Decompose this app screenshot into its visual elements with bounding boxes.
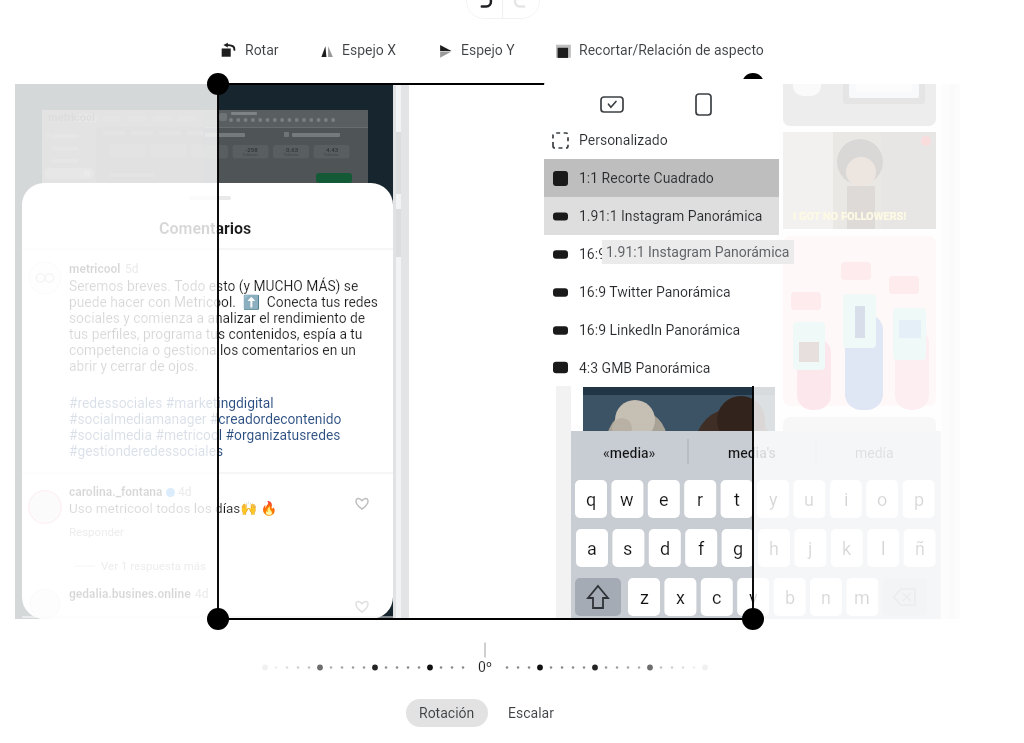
staticText: tus perfiles, programa tus contenidos, e… — [69, 326, 363, 342]
staticText: Uso metricool todos los días🙌 🔥 — [69, 500, 278, 516]
button[interactable]: Espejo X — [315, 38, 403, 62]
staticText: ñ — [915, 538, 925, 559]
staticText: Followers — [324, 153, 340, 157]
staticText: e — [659, 489, 669, 510]
staticText: j — [808, 538, 813, 559]
staticText: 16:9 Instagram Historias — [579, 246, 733, 262]
button[interactable]: Recortar/Relación de aspecto — [550, 38, 770, 62]
staticText: z — [640, 587, 649, 608]
staticText: s — [623, 538, 633, 559]
button[interactable]: 16:9 Twitter Panorámica — [544, 273, 779, 311]
staticText: Comentarios — [159, 219, 252, 238]
staticText: f — [698, 538, 705, 559]
staticText: a — [587, 538, 597, 559]
staticText: 4d — [195, 587, 209, 601]
staticText: abrir y cerrar de ojos. — [69, 358, 198, 374]
staticText: #socialmediamanager #creadordecontenido — [69, 411, 342, 427]
staticText: 0.63 — [286, 146, 299, 153]
button[interactable]: 1.91:1 Instagram Panorámica — [544, 197, 779, 235]
staticText: m — [854, 587, 870, 608]
staticText: y — [769, 489, 778, 510]
staticText: sociales y comienza a analizar el rendim… — [69, 310, 366, 326]
staticText: g — [733, 538, 744, 559]
button[interactable]: Rotación — [406, 699, 488, 727]
staticText: media's — [728, 445, 776, 461]
staticText: medía — [855, 445, 894, 461]
staticText: #socialmedia #metricool #organizatusrede… — [69, 427, 341, 443]
staticText: k — [842, 538, 852, 559]
staticText: l — [881, 538, 886, 559]
staticText: «media» — [603, 445, 656, 461]
staticText: metricool — [69, 262, 121, 276]
staticText: Seremos breves. Todo esto (y MUCHO MÁS) … — [69, 278, 359, 294]
staticText: Responder — [69, 525, 124, 538]
staticText: x — [676, 587, 685, 608]
button[interactable]: Rotar — [214, 38, 285, 62]
button[interactable]: Horizontal — [596, 91, 628, 117]
staticText: carolina._fontana — [69, 485, 163, 499]
staticText: #redessociales #marketingdigital — [69, 395, 274, 411]
staticText: 5d — [125, 262, 139, 276]
staticText: gedalia.busines.online — [69, 587, 191, 601]
button[interactable]: Deshacer — [466, 0, 502, 19]
staticText: 0º — [478, 659, 493, 675]
button[interactable]: 1.91:1 Instagram Panorámica — [602, 240, 794, 264]
staticText: 1.91:1 Instagram Panorámica — [606, 244, 790, 260]
staticText: 4d — [178, 485, 192, 499]
staticText: p — [914, 489, 925, 510]
button[interactable]: Vertical — [687, 91, 719, 117]
staticText: #gestionderedessociales — [69, 443, 224, 459]
staticText: u — [804, 489, 814, 510]
staticText: r — [697, 489, 704, 510]
button[interactable]: 16:9 Instagram Historias — [544, 235, 779, 273]
staticText: -258 — [245, 146, 258, 153]
staticText: t — [734, 489, 740, 510]
staticText: I GOT NO FOLLOWERS! — [793, 210, 907, 223]
button[interactable]: Escalar — [498, 699, 564, 727]
staticText: w — [620, 489, 634, 510]
staticText: competencia o gestiona los comentarios e… — [69, 342, 356, 358]
button[interactable]: 16:9 LinkedIn Panorámica — [544, 311, 779, 349]
staticText: Followers — [243, 153, 259, 157]
staticText: Personalizado — [579, 132, 668, 148]
staticText: Rotar — [245, 42, 279, 58]
staticText: 16:9 Twitter Panorámica — [579, 284, 731, 300]
staticText: 1:1 Recorte Cuadrado — [579, 170, 714, 186]
button[interactable]: Rehacer — [503, 0, 540, 19]
staticText: Espejo Y — [461, 42, 515, 58]
staticText: i — [844, 489, 849, 510]
staticText: d — [660, 538, 671, 559]
staticText: 1.91:1 Instagram Panorámica — [579, 208, 763, 224]
staticText: Ver 1 respuesta más — [101, 559, 207, 572]
staticText: b — [785, 587, 796, 608]
staticText: Recortar/Relación de aspecto — [579, 42, 764, 58]
staticText: q — [586, 489, 597, 510]
button[interactable]: Personalizado — [544, 121, 779, 159]
staticText: c — [712, 587, 722, 608]
staticText: Escalar — [508, 705, 554, 721]
staticText: 16:9 LinkedIn Panorámica — [579, 322, 741, 338]
staticText: n — [821, 587, 831, 608]
staticText: Rotación — [419, 705, 475, 721]
staticText: v — [749, 587, 758, 608]
staticText: 4.43 — [326, 146, 339, 153]
button[interactable]: Espejo Y — [434, 38, 521, 62]
button[interactable]: 4:3 GMB Panorámica — [544, 349, 779, 386]
staticText: h — [769, 538, 779, 559]
staticText: puede hacer con Metricool. ⬆ Conecta tus… — [69, 294, 378, 310]
staticText: Followers — [284, 153, 300, 157]
staticText: o — [877, 489, 888, 510]
button[interactable]: 1:1 Recorte Cuadrado — [544, 159, 779, 197]
staticText: Espejo X — [342, 42, 397, 58]
staticText: 4:3 GMB Panorámica — [579, 360, 711, 376]
